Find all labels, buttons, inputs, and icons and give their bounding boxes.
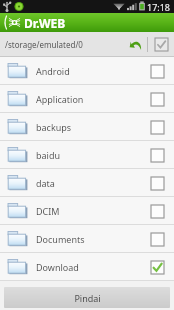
button[interactable]: Pindai: [4, 287, 170, 308]
button[interactable]: Selected: [147, 257, 167, 277]
staticText: DCIM: [36, 205, 147, 217]
staticText: Download: [36, 261, 147, 273]
button[interactable]: Not selected: [147, 201, 167, 221]
button[interactable]: Not selected: [147, 117, 167, 137]
button[interactable]: Not selected: [147, 229, 167, 249]
button[interactable]: backups: [0, 113, 174, 140]
button[interactable]: Not selected: [147, 89, 167, 109]
staticText: data: [36, 177, 147, 189]
button[interactable]: Not selected: [147, 61, 167, 81]
staticText: /storage/emulated/0: [5, 39, 125, 50]
button[interactable]: data: [0, 169, 174, 196]
staticText: Documents: [36, 233, 147, 245]
button[interactable]: Application: [0, 85, 174, 112]
staticText: Application: [36, 93, 147, 105]
staticText: 17:18: [147, 1, 171, 13]
button[interactable]: baidu: [0, 141, 174, 168]
button[interactable]: Android: [0, 57, 174, 84]
button[interactable]: Not selected: [147, 145, 167, 165]
button[interactable]: Up one level: [125, 32, 147, 57]
staticText: baidu: [36, 149, 147, 161]
button[interactable]: DCIM: [0, 197, 174, 224]
button[interactable]: Documents: [0, 225, 174, 252]
staticText: Pindai: [74, 292, 101, 304]
staticText: Android: [36, 65, 147, 77]
button[interactable]: Select all: [151, 32, 171, 57]
button[interactable]: Not selected: [147, 173, 167, 193]
staticText: Dr.WEB: [24, 15, 66, 31]
staticText: backups: [36, 121, 147, 133]
button[interactable]: Download: [0, 253, 174, 280]
